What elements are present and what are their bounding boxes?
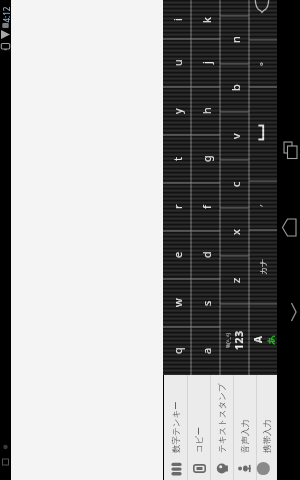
staticText: r xyxy=(170,204,185,209)
staticText: 音声入力 xyxy=(240,419,251,453)
staticText: %(^_^) xyxy=(225,332,232,348)
button[interactable]: q xyxy=(163,327,191,375)
button[interactable]: t xyxy=(163,135,191,183)
staticText: j xyxy=(199,61,214,64)
staticText: k xyxy=(199,17,214,23)
button[interactable]: Input mode xyxy=(249,304,277,375)
staticText: テキストスタンプ xyxy=(217,383,228,453)
staticText: a xyxy=(199,347,214,354)
button[interactable]: c xyxy=(220,160,249,208)
staticText: t xyxy=(170,157,185,161)
button[interactable]: テキストスタンプ xyxy=(211,375,233,480)
button[interactable]: Recent apps xyxy=(277,138,300,480)
button[interactable]: u xyxy=(163,39,191,87)
staticText: コピー xyxy=(194,427,205,453)
staticText: x xyxy=(228,229,243,235)
staticText: 4:12 xyxy=(0,6,11,22)
button[interactable]: Period xyxy=(249,40,277,87)
staticText: z xyxy=(228,277,243,283)
button[interactable]: z xyxy=(220,256,249,304)
button[interactable]: x xyxy=(220,208,249,256)
staticText: c xyxy=(228,181,243,187)
button[interactable]: Kana xyxy=(249,230,277,304)
staticText: A xyxy=(251,336,265,343)
staticText: h xyxy=(199,107,214,114)
button[interactable]: g xyxy=(191,135,220,183)
button[interactable]: y xyxy=(163,87,191,135)
button[interactable]: Enter xyxy=(249,87,277,181)
staticText: d xyxy=(199,251,214,258)
button[interactable]: k xyxy=(191,0,220,39)
button[interactable]: v xyxy=(220,112,249,160)
button[interactable]: コピー xyxy=(188,375,210,480)
staticText: q xyxy=(170,347,185,354)
staticText: カナ xyxy=(258,258,268,275)
staticText: i xyxy=(170,18,185,21)
staticText: ′ xyxy=(257,204,269,207)
button[interactable]: %(^_^) xyxy=(220,304,249,375)
staticText: s xyxy=(199,300,214,306)
button[interactable]: b xyxy=(220,64,249,112)
staticText: n xyxy=(228,36,243,43)
staticText: u xyxy=(170,59,185,66)
staticText: y xyxy=(170,108,185,114)
button[interactable]: Comma xyxy=(249,181,277,230)
button[interactable]: s xyxy=(191,279,220,327)
staticText: w xyxy=(170,298,185,307)
staticText: f xyxy=(199,205,214,209)
button[interactable]: w xyxy=(163,279,191,327)
button[interactable]: n xyxy=(220,16,249,64)
staticText: 数字テンキー xyxy=(171,401,182,453)
staticText: v xyxy=(228,133,243,139)
staticText: e xyxy=(170,251,185,258)
button[interactable]: a xyxy=(191,327,220,375)
staticText: 携帯入力 xyxy=(262,419,273,453)
staticText: ° xyxy=(257,62,269,66)
button[interactable]: Backspace xyxy=(249,0,277,40)
button[interactable]: h xyxy=(191,87,220,135)
staticText: b xyxy=(228,84,243,91)
staticText: g xyxy=(199,155,214,162)
button[interactable]: i xyxy=(163,0,191,39)
button[interactable]: 数字テンキー xyxy=(165,375,187,480)
button[interactable]: f xyxy=(191,183,220,231)
button[interactable]: d xyxy=(191,231,220,279)
button[interactable]: e xyxy=(163,231,191,279)
button[interactable]: r xyxy=(163,183,191,231)
staticText: あ xyxy=(265,334,275,345)
staticText: 123 xyxy=(232,330,246,350)
button[interactable]: j xyxy=(191,39,220,87)
button[interactable]: 携帯入力 xyxy=(257,375,277,480)
button[interactable]: 音声入力 xyxy=(234,375,256,480)
